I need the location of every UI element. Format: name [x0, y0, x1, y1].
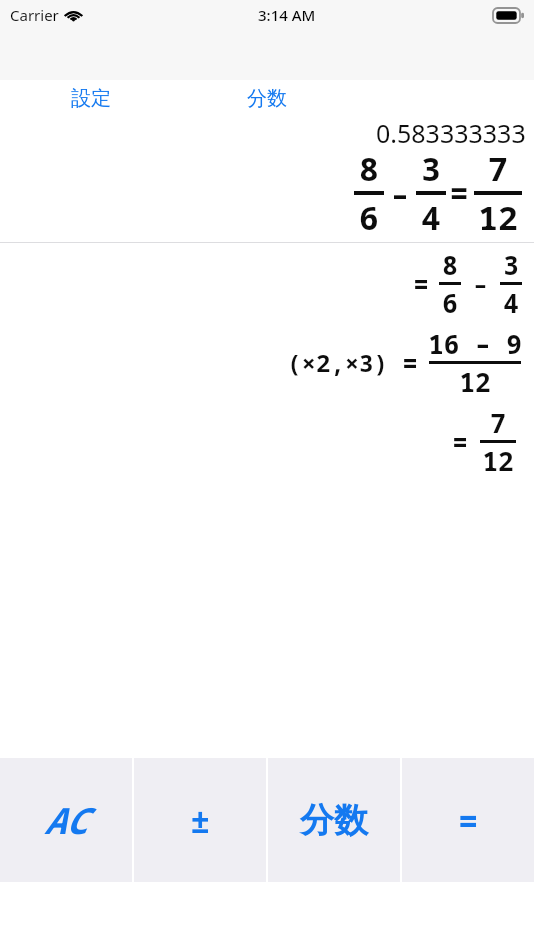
staticText: (×2,×3): [287, 346, 388, 379]
staticText: 4: [421, 195, 441, 240]
staticText: =: [452, 424, 468, 459]
button[interactable]: AC: [0, 758, 132, 882]
staticText: 分数: [300, 799, 368, 842]
staticText: 16 – 9: [428, 326, 522, 361]
staticText: 3:14 AM: [258, 5, 316, 25]
button[interactable]: =: [402, 758, 534, 882]
staticText: 分数: [247, 86, 287, 111]
staticText: 12: [482, 443, 514, 478]
staticText: ±: [190, 797, 211, 843]
staticText: 8: [442, 247, 458, 282]
staticText: –: [473, 267, 488, 300]
staticText: 3: [503, 247, 519, 282]
staticText: =: [449, 171, 469, 215]
staticText: AC: [44, 796, 88, 845]
staticText: Carrier: [10, 5, 59, 25]
staticText: 3: [421, 146, 441, 191]
staticText: =: [458, 797, 479, 843]
staticText: 8: [359, 146, 379, 191]
staticText: 6: [359, 195, 379, 240]
staticText: 4: [503, 285, 519, 320]
staticText: 0.583333333: [376, 116, 526, 144]
staticText: =: [402, 345, 418, 380]
staticText: =: [413, 266, 429, 301]
button[interactable]: 分数: [234, 80, 300, 116]
button[interactable]: ±: [134, 758, 266, 882]
button[interactable]: 設定: [58, 80, 124, 116]
button[interactable]: 分数: [268, 758, 400, 882]
staticText: 12: [459, 364, 491, 399]
staticText: –: [391, 173, 409, 214]
staticText: 7: [488, 146, 508, 191]
staticText: 12: [478, 195, 518, 240]
staticText: 7: [490, 405, 506, 440]
staticText: 設定: [71, 86, 111, 111]
staticText: 6: [442, 285, 458, 320]
